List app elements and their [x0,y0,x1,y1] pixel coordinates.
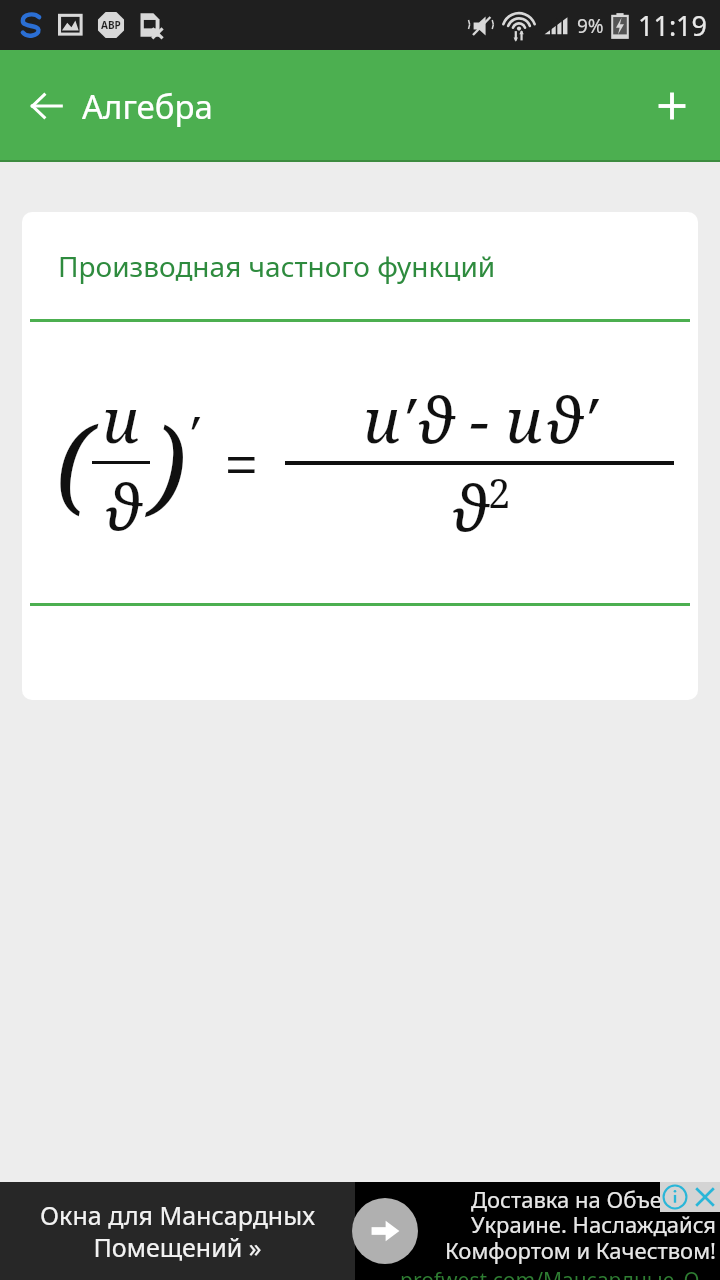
button[interactable]: Ad info [660,1182,690,1212]
button[interactable]: Next ad [352,1198,418,1264]
staticText: profwest.com/Мансардные_О... [400,1266,716,1280]
staticText: 2 [488,465,511,519]
staticText: u [102,377,140,461]
staticText: 11:19 [638,7,708,44]
staticText: = [224,421,259,505]
button[interactable]: Back [22,82,70,130]
button[interactable]: Окна для Мансардных Помещений » [0,1182,720,1280]
button[interactable]: Производная частного функций [22,212,698,700]
staticText: Доставка на Объект по Украине. Наслаждай… [445,1184,716,1266]
staticText: 9% [577,13,604,39]
staticText: Окна для Мансардных Помещений » [40,1198,315,1264]
staticText: u′ϑ − uϑ′ [363,377,596,461]
staticText: ABP [101,18,121,32]
staticText: ϑ [448,465,488,549]
staticText: Производная частного функций [58,247,496,285]
button[interactable]: Close ad [690,1182,720,1212]
staticText: ) [150,392,186,534]
staticText: Алгебра [82,84,213,129]
staticText: ( [56,392,92,534]
button[interactable]: Add [646,80,698,132]
staticText: ′ [186,399,198,470]
staticText: ϑ [101,464,141,548]
